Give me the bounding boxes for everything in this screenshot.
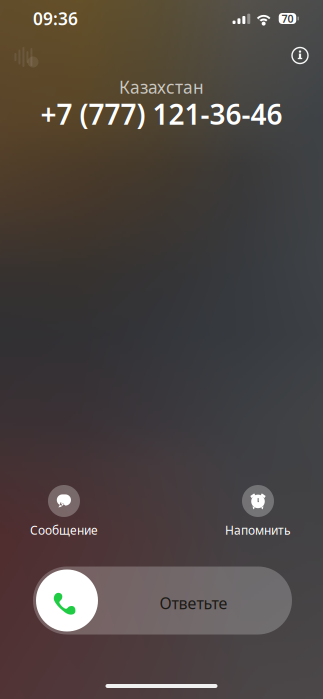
- staticText: Ответьте: [159, 592, 227, 614]
- staticText: Сообщение: [30, 522, 98, 538]
- button[interactable]: Сообщение: [9, 485, 119, 537]
- button[interactable]: Напомнить: [203, 485, 313, 537]
- staticText: Казахстан: [119, 75, 204, 98]
- staticText: 70: [281, 11, 293, 26]
- button[interactable]: Ответьте: [33, 566, 292, 634]
- staticText: 09:36: [33, 7, 78, 30]
- staticText: Напомнить: [225, 522, 291, 538]
- button[interactable]: Call info: [284, 39, 316, 71]
- staticText: +7 (777) 121-36-46: [40, 95, 282, 133]
